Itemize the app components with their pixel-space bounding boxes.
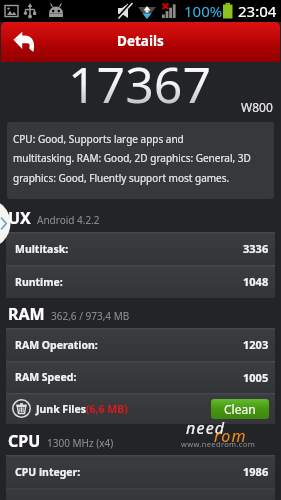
staticText: RAM Speed: [15, 370, 77, 384]
button[interactable]: Back [1, 22, 47, 62]
staticText: CPU [8, 430, 41, 452]
staticText: Details [117, 32, 164, 50]
staticText: Multitask: [15, 242, 69, 256]
button[interactable]: Clean [211, 399, 269, 419]
button[interactable]: CPU integer: [6, 455, 275, 488]
staticText: 1005 [243, 370, 269, 385]
staticText: 1203 [243, 337, 269, 352]
staticText: CPU integer: [15, 465, 81, 479]
staticText: 1300 MHz (x4) [47, 436, 114, 450]
staticText: 3336 [243, 241, 269, 256]
staticText: UX [8, 207, 31, 229]
staticText: Runtime: [15, 275, 63, 289]
staticText: Clean [224, 401, 256, 417]
staticText: 17367 [68, 50, 211, 110]
button[interactable] [6, 488, 275, 500]
staticText: 362,6 / 973,4 MB [51, 309, 130, 323]
staticText: CPU: Good, Supports large apps and [13, 132, 184, 146]
button[interactable]: Multitask: [6, 232, 275, 265]
staticText: RAM [8, 303, 45, 325]
button[interactable]: RAM Operation: [6, 328, 275, 361]
staticText: 1048 [243, 274, 269, 289]
staticText: Android 4.2.2 [37, 213, 100, 227]
staticText: W800 [241, 99, 273, 115]
staticText: multitasking. RAM: Good, 2D graphics: Ge… [13, 151, 251, 165]
staticText: RAM Operation: [15, 338, 98, 352]
staticText: need [186, 417, 226, 439]
button[interactable]: RAM Speed: [6, 361, 275, 393]
staticText: Junk Files [36, 402, 86, 416]
staticText: rom [214, 425, 247, 447]
staticText: (6,6 MB) [86, 402, 128, 416]
staticText: 23:04 [238, 1, 277, 21]
staticText: www.needrom.com [181, 439, 256, 449]
staticText: 1986 [243, 464, 269, 479]
button[interactable]: Runtime: [6, 265, 275, 298]
staticText: 100% [184, 1, 223, 21]
staticText: graphics: Good, Fluently support most ga… [13, 171, 230, 185]
